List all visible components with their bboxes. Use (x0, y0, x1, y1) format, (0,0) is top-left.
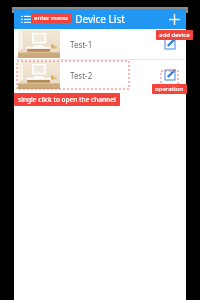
staticText: add device (159, 31, 190, 39)
button[interactable]: Test-2 (14, 60, 186, 90)
button[interactable]: Edit Test-2 (162, 67, 178, 83)
staticText: Test-1 (70, 39, 93, 50)
staticText: enter menu (34, 14, 68, 22)
button[interactable]: Edit Test-1 (162, 36, 178, 52)
staticText: Device List (75, 12, 125, 26)
staticText: operation (155, 85, 184, 93)
button[interactable]: Menu (18, 11, 34, 27)
staticText: single click to open the channel (18, 95, 116, 104)
button[interactable]: Test-1 (14, 29, 186, 59)
button[interactable]: Add device (165, 10, 183, 28)
staticText: Test-2 (70, 70, 93, 81)
